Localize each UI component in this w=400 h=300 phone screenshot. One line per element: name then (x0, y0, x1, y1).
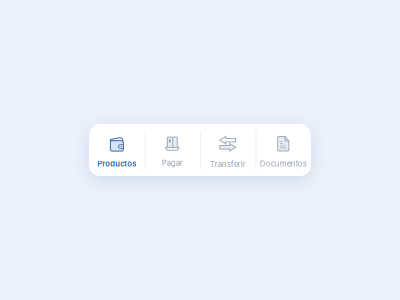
staticText: Documentos (260, 159, 307, 168)
staticText: Pagar (162, 158, 183, 168)
button[interactable]: Productos (89, 124, 144, 176)
staticText: Transferir (210, 159, 246, 169)
staticText: Productos (97, 159, 136, 168)
button[interactable]: Pagar (144, 124, 200, 176)
button[interactable]: Transferir (200, 124, 255, 176)
button[interactable]: Documentos (255, 124, 311, 176)
